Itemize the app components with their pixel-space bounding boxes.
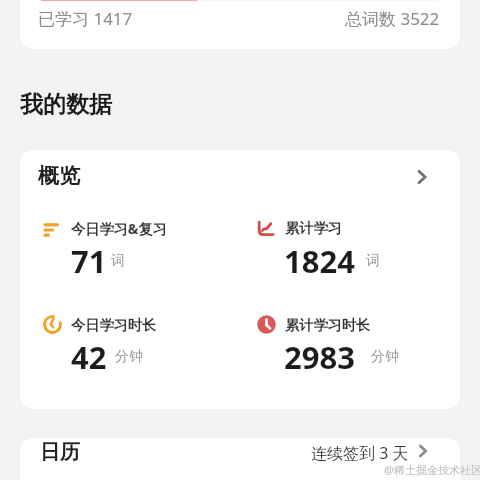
staticText: 累计学习时长 [285, 316, 371, 334]
staticText: 已学习 1417 [38, 7, 133, 30]
staticText: 71 [71, 240, 107, 282]
staticText: 累计学习 [285, 219, 342, 237]
button[interactable]: 日历 [20, 438, 460, 480]
staticText: 今日学习&复习 [71, 219, 167, 238]
staticText: @稀土掘金技术社区 [384, 462, 480, 477]
staticText: 日历 [40, 440, 80, 465]
staticText: 概览 [38, 163, 80, 189]
staticText: 词 [111, 252, 125, 270]
staticText: 2983 [284, 336, 355, 378]
staticText: 词 [366, 252, 380, 270]
button[interactable]: 概览 [20, 150, 460, 202]
staticText: 总词数 3522 [345, 7, 440, 30]
staticText: 连续签到 3 天 [311, 442, 409, 464]
staticText: 我的数据 [20, 90, 112, 119]
staticText: 分钟 [371, 348, 399, 366]
staticText: 今日学习时长 [71, 316, 157, 334]
staticText: 42 [71, 336, 107, 378]
staticText: 分钟 [115, 348, 143, 366]
staticText: 1824 [284, 240, 355, 282]
